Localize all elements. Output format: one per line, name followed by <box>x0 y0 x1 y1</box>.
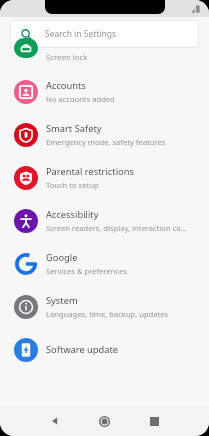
staticText: Accounts <box>46 79 86 92</box>
staticText: Google <box>46 251 78 264</box>
staticText: System <box>46 294 78 307</box>
button[interactable]: Home <box>79 406 129 436</box>
staticText: Software update <box>46 343 119 356</box>
button[interactable]: Screen lock <box>0 50 209 70</box>
button[interactable]: Google <box>0 242 209 285</box>
staticText: Smart Safety <box>46 122 102 135</box>
staticText: Parental restrictions <box>46 165 134 178</box>
button[interactable]: Smart Safety <box>0 113 209 156</box>
staticText: Accessibility <box>46 208 99 221</box>
staticText: Search in Settings <box>45 28 117 40</box>
staticText: Languages, time, backup, updates <box>46 309 169 319</box>
staticText: Touch to setup <box>46 180 99 190</box>
button[interactable]: Accessibility <box>0 199 209 242</box>
staticText: Emergency mode, safety features <box>46 137 166 147</box>
button[interactable]: Software update <box>0 328 209 371</box>
button[interactable]: System <box>0 285 209 328</box>
staticText: Screen readers, display, interaction co… <box>46 223 187 233</box>
button[interactable]: Search in Settings <box>10 20 199 48</box>
button[interactable]: Accounts <box>0 70 209 113</box>
staticText: Screen lock <box>46 52 88 63</box>
button[interactable]: Parental restrictions <box>0 156 209 199</box>
staticText: No accounts added <box>46 94 115 104</box>
button[interactable]: Back <box>30 406 79 436</box>
staticText: Services & preferences <box>46 266 127 276</box>
button[interactable]: Recents <box>129 406 179 436</box>
